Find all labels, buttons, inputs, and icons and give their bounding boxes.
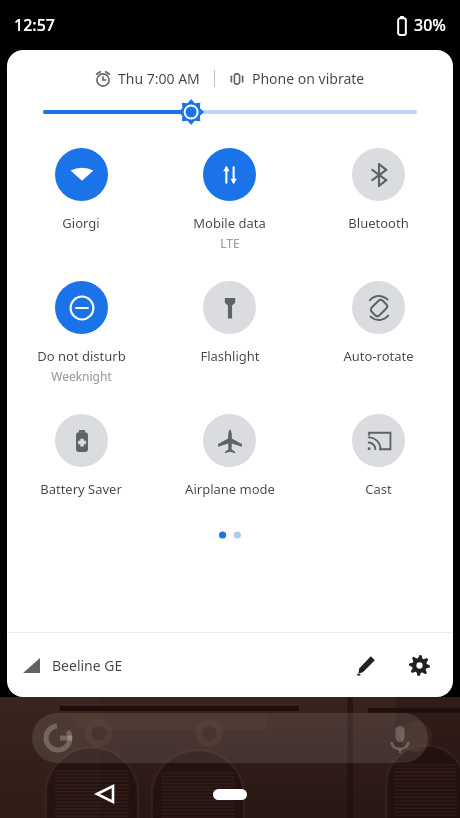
staticText: Auto-rotate — [343, 347, 414, 365]
staticText: Do not disturb — [37, 347, 126, 365]
button[interactable]: Airplane mode — [155, 414, 304, 498]
button[interactable]: Beeline GE — [7, 652, 131, 679]
staticText: 30% — [414, 14, 446, 36]
button[interactable]: Do not disturb — [7, 281, 155, 384]
button[interactable]: Giorgi — [7, 148, 155, 232]
button[interactable]: Brightness — [7, 90, 453, 134]
staticText: Flashlight — [200, 347, 260, 365]
button[interactable]: Home — [195, 779, 265, 809]
staticText: Thu 7:00 AM — [118, 69, 200, 88]
button[interactable]: Google Search — [32, 713, 428, 763]
staticText: Weeknight — [51, 368, 112, 384]
button[interactable]: Cast — [304, 414, 453, 498]
staticText: Mobile data — [193, 214, 266, 232]
button[interactable]: Phone on vibrate — [227, 67, 367, 90]
staticText: LTE — [220, 235, 240, 251]
button[interactable]: Auto-rotate — [304, 281, 453, 365]
staticText: Bluetooth — [348, 214, 409, 232]
button[interactable]: Mobile data — [155, 148, 304, 251]
staticText: Airplane mode — [185, 480, 275, 498]
staticText: 12:57 — [14, 14, 55, 36]
button[interactable]: Flashlight — [155, 281, 304, 365]
button[interactable]: Thu 7:00 AM — [93, 67, 202, 90]
staticText: Cast — [365, 480, 392, 498]
button[interactable]: Settings — [397, 643, 441, 687]
staticText: Beeline GE — [52, 656, 123, 675]
staticText: Phone on vibrate — [252, 69, 365, 88]
button[interactable]: Edit tiles — [344, 643, 388, 687]
staticText: Giorgi — [62, 214, 100, 232]
button[interactable]: Bluetooth — [304, 148, 453, 232]
button[interactable]: Back — [85, 774, 125, 814]
button[interactable]: Battery Saver — [7, 414, 155, 498]
staticText: Battery Saver — [40, 480, 122, 498]
